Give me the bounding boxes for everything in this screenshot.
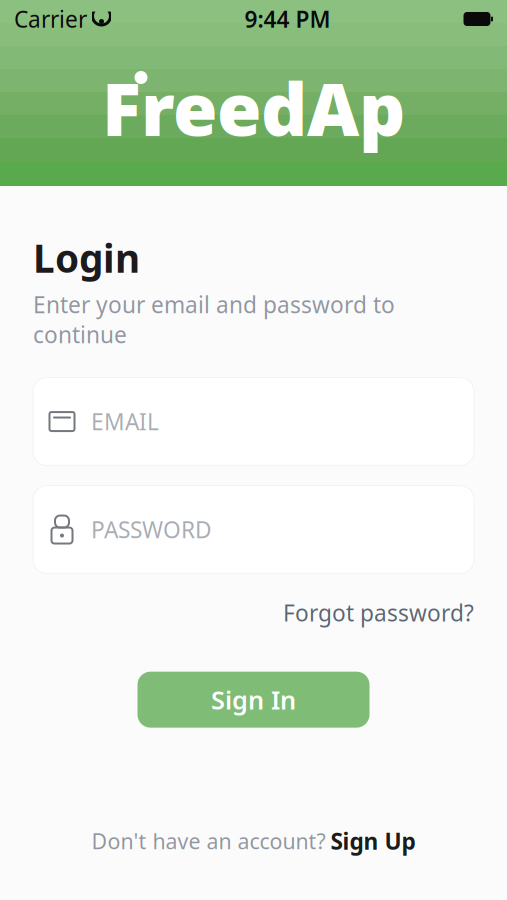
staticText: FreedAp (102, 60, 405, 156)
button[interactable]: EMAIL (33, 378, 474, 466)
staticText: Sign In (211, 683, 296, 716)
staticText: EMAIL (91, 406, 159, 437)
staticText: Enter your email and password to continu… (33, 289, 395, 349)
button[interactable]: Don't have an account? (77, 818, 429, 864)
staticText: PASSWORD (91, 514, 212, 545)
staticText: 9:44 PM (244, 4, 330, 34)
staticText: Sign Up (330, 826, 415, 856)
staticText: Forgot password? (283, 598, 474, 628)
staticText: Don't have an account? (91, 827, 325, 855)
staticText: Carrier (14, 4, 87, 34)
button[interactable]: Forgot password? (283, 592, 474, 634)
button[interactable]: PASSWORD (33, 486, 474, 574)
staticText: Login (33, 232, 140, 283)
button[interactable]: Sign In (137, 672, 369, 728)
